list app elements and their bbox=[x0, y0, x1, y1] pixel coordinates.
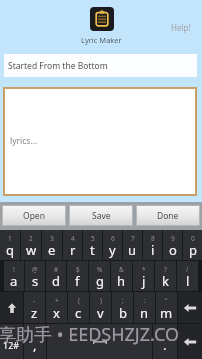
staticText: j bbox=[142, 272, 146, 290]
button[interactable]: * bbox=[133, 261, 154, 291]
button[interactable]: 12# bbox=[0, 324, 23, 359]
button[interactable]: 9 bbox=[163, 230, 182, 260]
staticText: k bbox=[162, 272, 169, 290]
staticText: p bbox=[189, 241, 197, 259]
staticText: Done bbox=[157, 210, 179, 222]
staticText: Save bbox=[92, 210, 111, 222]
staticText: ! bbox=[13, 265, 15, 274]
staticText: w bbox=[26, 241, 37, 259]
staticText: 2 bbox=[29, 234, 33, 243]
staticText: o bbox=[169, 241, 177, 259]
staticText: $ bbox=[76, 265, 80, 274]
staticText: ( bbox=[78, 296, 80, 305]
staticText: x bbox=[53, 304, 60, 322]
button[interactable]: / bbox=[177, 261, 198, 291]
staticText: " bbox=[165, 296, 168, 305]
staticText: s bbox=[32, 272, 39, 290]
staticText: 享助手 • EEDSHZJZ.CO bbox=[0, 322, 180, 347]
staticText: 3 bbox=[50, 234, 54, 243]
staticText: n bbox=[140, 304, 149, 322]
staticText: ; bbox=[122, 296, 124, 305]
staticText: e bbox=[48, 241, 56, 259]
button[interactable]: - bbox=[24, 292, 45, 323]
staticText: : bbox=[144, 296, 146, 305]
staticText: a bbox=[10, 272, 18, 290]
button[interactable]: 1 bbox=[0, 230, 20, 260]
button[interactable]: ( bbox=[68, 292, 89, 323]
button[interactable]: lyrics... bbox=[3, 87, 197, 196]
staticText: l bbox=[186, 272, 190, 290]
button[interactable]: Backspace bbox=[178, 292, 202, 323]
staticText: m bbox=[160, 304, 173, 322]
staticText: / bbox=[186, 265, 189, 274]
staticText: d bbox=[52, 272, 60, 290]
staticText: . bbox=[163, 336, 167, 354]
staticText: q bbox=[6, 241, 14, 259]
staticText: z bbox=[31, 304, 38, 322]
button[interactable]: & bbox=[111, 261, 132, 291]
staticText: r bbox=[70, 241, 76, 259]
button[interactable]: 4 bbox=[63, 230, 82, 260]
button[interactable]: 0 bbox=[183, 230, 202, 260]
button[interactable]: 6 bbox=[103, 230, 122, 260]
button[interactable]: Done bbox=[136, 205, 200, 226]
staticText: c bbox=[75, 304, 82, 322]
button[interactable]: , bbox=[24, 324, 46, 359]
staticText: 7 bbox=[131, 234, 135, 243]
staticText: , bbox=[33, 336, 37, 354]
staticText: 12# bbox=[3, 339, 20, 351]
button[interactable]: $ bbox=[67, 261, 88, 291]
staticText: % bbox=[97, 265, 103, 274]
staticText: Open bbox=[23, 210, 45, 222]
button[interactable]: % bbox=[89, 261, 110, 291]
button[interactable]: ) bbox=[90, 292, 111, 323]
staticText: 6 bbox=[111, 234, 115, 243]
button[interactable]: Enter bbox=[178, 324, 202, 359]
staticText: ? bbox=[164, 265, 167, 274]
staticText: 9 bbox=[171, 234, 175, 243]
staticText: g bbox=[96, 272, 104, 290]
staticText: 8 bbox=[151, 234, 155, 243]
staticText: @ bbox=[32, 265, 38, 274]
button[interactable]: Shift bbox=[0, 292, 23, 323]
staticText: - bbox=[33, 296, 36, 305]
button[interactable]: . bbox=[153, 324, 177, 359]
staticText: u bbox=[128, 241, 137, 259]
staticText: Started From the Bottom bbox=[8, 60, 108, 72]
button[interactable]: 7 bbox=[123, 230, 142, 260]
staticText: v bbox=[97, 304, 104, 322]
button[interactable]: ? bbox=[155, 261, 176, 291]
button[interactable]: # bbox=[46, 261, 66, 291]
staticText: # bbox=[54, 265, 59, 274]
button[interactable]: : bbox=[134, 292, 155, 323]
button[interactable]: 2 bbox=[21, 230, 41, 260]
button[interactable]: Help! bbox=[171, 22, 191, 33]
button[interactable]: @ bbox=[25, 261, 45, 291]
staticText: 5 bbox=[91, 234, 95, 243]
button[interactable]: Open bbox=[2, 205, 66, 226]
staticText: 1 bbox=[8, 234, 12, 243]
staticText: i bbox=[151, 241, 155, 259]
button[interactable]: Started From the Bottom bbox=[4, 54, 197, 77]
button[interactable]: 8 bbox=[143, 230, 162, 260]
staticText: Lyric Maker bbox=[81, 35, 122, 45]
staticText: * bbox=[142, 265, 146, 274]
button[interactable]: ; bbox=[112, 292, 133, 323]
button[interactable]: + bbox=[46, 292, 67, 323]
button[interactable]: Space bbox=[47, 324, 152, 359]
staticText: Help! bbox=[171, 22, 191, 33]
staticText: lyrics... bbox=[10, 135, 38, 147]
staticText: 0 bbox=[191, 234, 195, 243]
button[interactable]: " bbox=[156, 292, 177, 323]
staticText: 4 bbox=[71, 234, 75, 243]
staticText: y bbox=[109, 241, 116, 259]
staticText: & bbox=[119, 265, 124, 274]
staticText: b bbox=[119, 304, 127, 322]
staticText: + bbox=[55, 296, 59, 305]
staticText: h bbox=[117, 272, 126, 290]
button[interactable]: ! bbox=[4, 261, 24, 291]
button[interactable]: Save bbox=[69, 205, 133, 226]
button[interactable]: 3 bbox=[42, 230, 62, 260]
button[interactable]: Lyric Maker bbox=[90, 7, 114, 31]
button[interactable]: 5 bbox=[83, 230, 102, 260]
